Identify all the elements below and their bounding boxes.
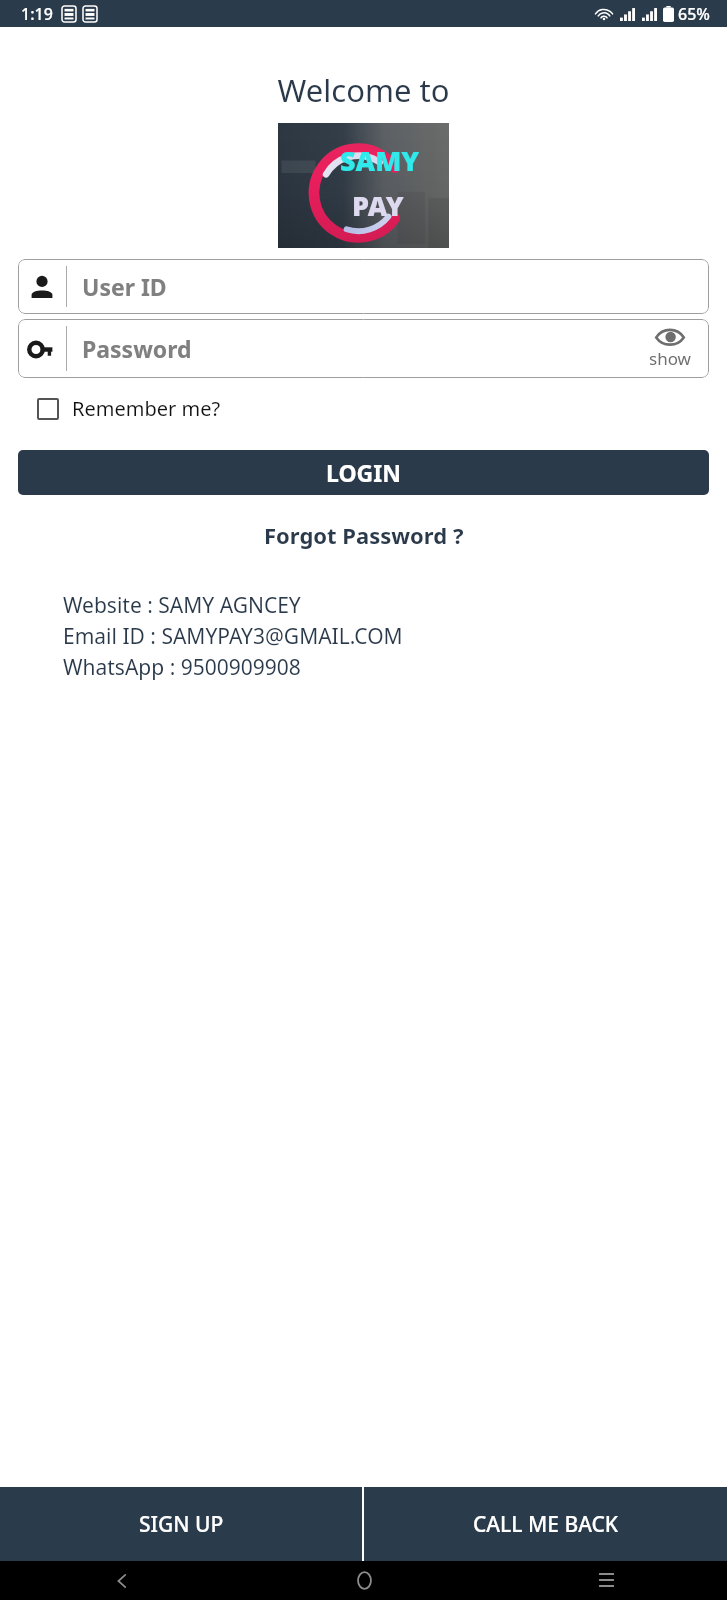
staticText: Website : SAMY AGNCEY [63, 591, 301, 620]
button[interactable]: Back [0, 1561, 243, 1600]
staticText: 65% [678, 3, 710, 25]
staticText: Password [82, 333, 192, 364]
button[interactable]: SIGN UP [0, 1487, 362, 1561]
staticText: PAY [352, 187, 404, 224]
staticText: Email ID : SAMYPAY3@GMAIL.COM [63, 622, 403, 651]
staticText: SAMY [340, 142, 420, 179]
staticText: Welcome to [0, 69, 727, 111]
staticText: LOGIN [326, 457, 401, 488]
button[interactable]: Recent apps [485, 1561, 727, 1600]
staticText: show [649, 347, 691, 370]
staticText: SIGN UP [139, 1510, 224, 1539]
button[interactable]: Password [18, 319, 709, 378]
staticText: 1:19 [21, 3, 53, 25]
button[interactable]: Remember me? [33, 389, 225, 428]
button[interactable]: CALL ME BACK [364, 1487, 727, 1561]
button[interactable]: User ID [18, 259, 709, 314]
staticText: User ID [82, 271, 167, 302]
button[interactable]: LOGIN [18, 450, 709, 495]
button[interactable]: Home [243, 1561, 485, 1600]
staticText: Remember me? [72, 395, 221, 422]
button[interactable]: Show password [643, 325, 697, 372]
button[interactable]: Forgot Password ? [254, 516, 474, 554]
staticText: WhatsApp : 9500909908 [63, 653, 301, 682]
staticText: CALL ME BACK [473, 1510, 619, 1539]
